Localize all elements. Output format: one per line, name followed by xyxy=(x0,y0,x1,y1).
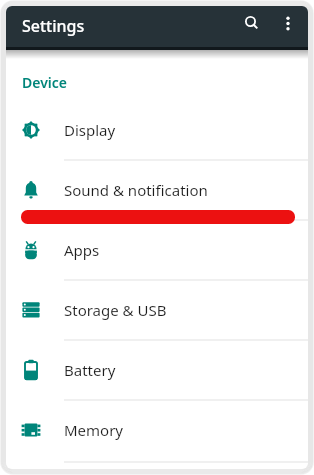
staticText: Settings xyxy=(22,15,85,37)
button[interactable]: Display xyxy=(6,100,308,160)
button[interactable] xyxy=(236,10,268,42)
staticText: Battery xyxy=(64,360,116,380)
button[interactable]: Storage & USB xyxy=(6,280,308,340)
button[interactable]: Memory xyxy=(6,400,308,460)
button[interactable]: Battery xyxy=(6,340,308,400)
button[interactable]: Sound & notification xyxy=(6,160,308,220)
staticText: Display xyxy=(64,120,116,140)
staticText: Device xyxy=(22,73,67,92)
staticText: Memory xyxy=(64,420,124,440)
staticText: Apps xyxy=(64,240,100,260)
staticText: Sound & notification xyxy=(64,180,208,200)
button[interactable]: Apps xyxy=(6,220,308,280)
staticText: Storage & USB xyxy=(64,300,167,320)
button[interactable] xyxy=(272,10,304,42)
button[interactable]: Settings xyxy=(6,6,308,47)
